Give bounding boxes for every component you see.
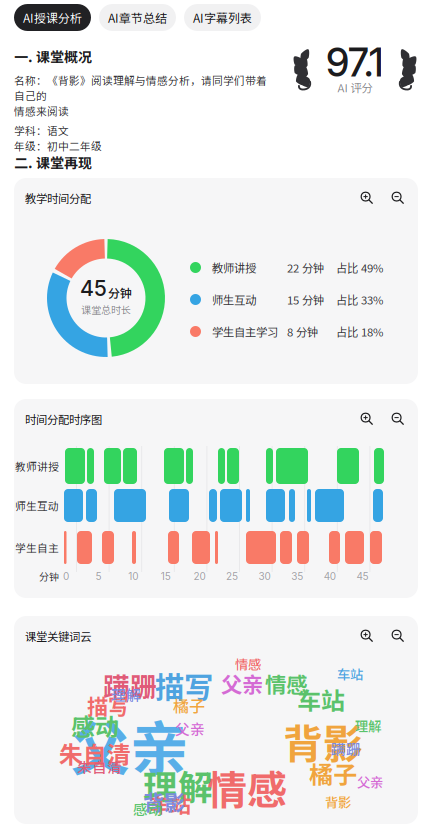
staticText: 8 分钟: [287, 323, 318, 340]
staticText: 师生互动: [15, 498, 59, 513]
staticText: 父亲: [221, 668, 263, 699]
staticText: 25: [226, 570, 238, 582]
staticText: 车站: [149, 788, 191, 819]
staticText: 朱自清: [77, 756, 122, 777]
staticText: 5: [96, 570, 102, 582]
staticText: 理解: [111, 684, 141, 705]
staticText: 分钟: [108, 284, 132, 301]
staticText: 占比 18%: [336, 323, 383, 340]
staticText: 描写: [155, 664, 213, 706]
staticText: 情感: [265, 668, 307, 699]
staticText: 30: [259, 570, 271, 582]
staticText: 描写: [87, 690, 129, 721]
staticText: 45: [80, 275, 107, 301]
staticText: 教师讲授: [212, 259, 256, 276]
staticText: 分钟: [39, 569, 59, 583]
staticText: 车站: [297, 682, 345, 717]
staticText: AI字幕列表: [193, 9, 252, 26]
staticText: 15: [161, 570, 171, 582]
staticText: AI 评分: [337, 79, 372, 95]
staticText: 时间分配时序图: [25, 411, 102, 427]
staticText: 车站: [337, 664, 363, 683]
staticText: 10: [128, 570, 138, 582]
staticText: 40: [324, 570, 336, 582]
staticText: 学科：语文: [14, 123, 69, 138]
staticText: 父亲: [175, 718, 205, 739]
staticText: 背影: [283, 712, 363, 770]
staticText: AI授课分析: [23, 9, 82, 26]
button[interactable]: AI授课分析: [14, 4, 91, 31]
staticText: 教学时间分配: [25, 190, 91, 206]
button[interactable]: 缩小: [389, 410, 407, 428]
staticText: 0: [63, 570, 69, 582]
staticText: 名称：《背影》阅读理解与情感分析，请同学们带着自己的: [14, 72, 267, 103]
staticText: 15 分钟: [287, 291, 324, 308]
staticText: 占比 49%: [336, 259, 383, 276]
staticText: 蹒跚: [331, 738, 361, 759]
staticText: 情感: [235, 654, 261, 673]
staticText: 橘子: [309, 756, 357, 791]
staticText: 感动: [133, 798, 163, 819]
staticText: 一. 课堂概况: [14, 46, 92, 66]
staticText: 占比 33%: [336, 291, 383, 308]
staticText: 背影: [325, 792, 351, 811]
staticText: 教师讲授: [15, 458, 59, 474]
staticText: 二. 课堂再现: [14, 152, 92, 172]
staticText: 朱自清: [59, 736, 131, 771]
staticText: AI章节总结: [108, 9, 167, 26]
staticText: 年级：初中二年级: [14, 138, 102, 153]
staticText: 情感: [207, 758, 287, 816]
staticText: 课堂关键词云: [25, 628, 91, 644]
staticText: 97.1: [326, 39, 384, 86]
staticText: 22 分钟: [287, 259, 324, 276]
staticText: 背影: [143, 786, 185, 817]
staticText: 父亲: [71, 702, 189, 787]
staticText: 父亲: [357, 772, 383, 791]
button[interactable]: 缩小: [389, 627, 407, 645]
button[interactable]: 放大: [358, 189, 376, 207]
staticText: 学生自主学习: [212, 323, 278, 340]
staticText: 师生互动: [212, 291, 256, 308]
button[interactable]: 放大: [358, 627, 376, 645]
button[interactable]: 缩小: [389, 189, 407, 207]
staticText: 课堂总时长: [81, 302, 131, 317]
staticText: 20: [193, 570, 205, 582]
staticText: 蹒跚: [103, 666, 157, 705]
button[interactable]: AI字幕列表: [184, 4, 261, 31]
staticText: 感动: [71, 708, 119, 743]
staticText: 45: [356, 570, 368, 582]
staticText: 理解: [355, 716, 381, 735]
staticText: 学生自主: [15, 540, 59, 555]
staticText: 情感来阅读: [14, 103, 69, 119]
staticText: 35: [291, 570, 303, 582]
staticText: 理解: [143, 760, 213, 810]
staticText: 橘子: [173, 694, 205, 717]
button[interactable]: AI章节总结: [99, 4, 176, 31]
button[interactable]: 放大: [358, 410, 376, 428]
